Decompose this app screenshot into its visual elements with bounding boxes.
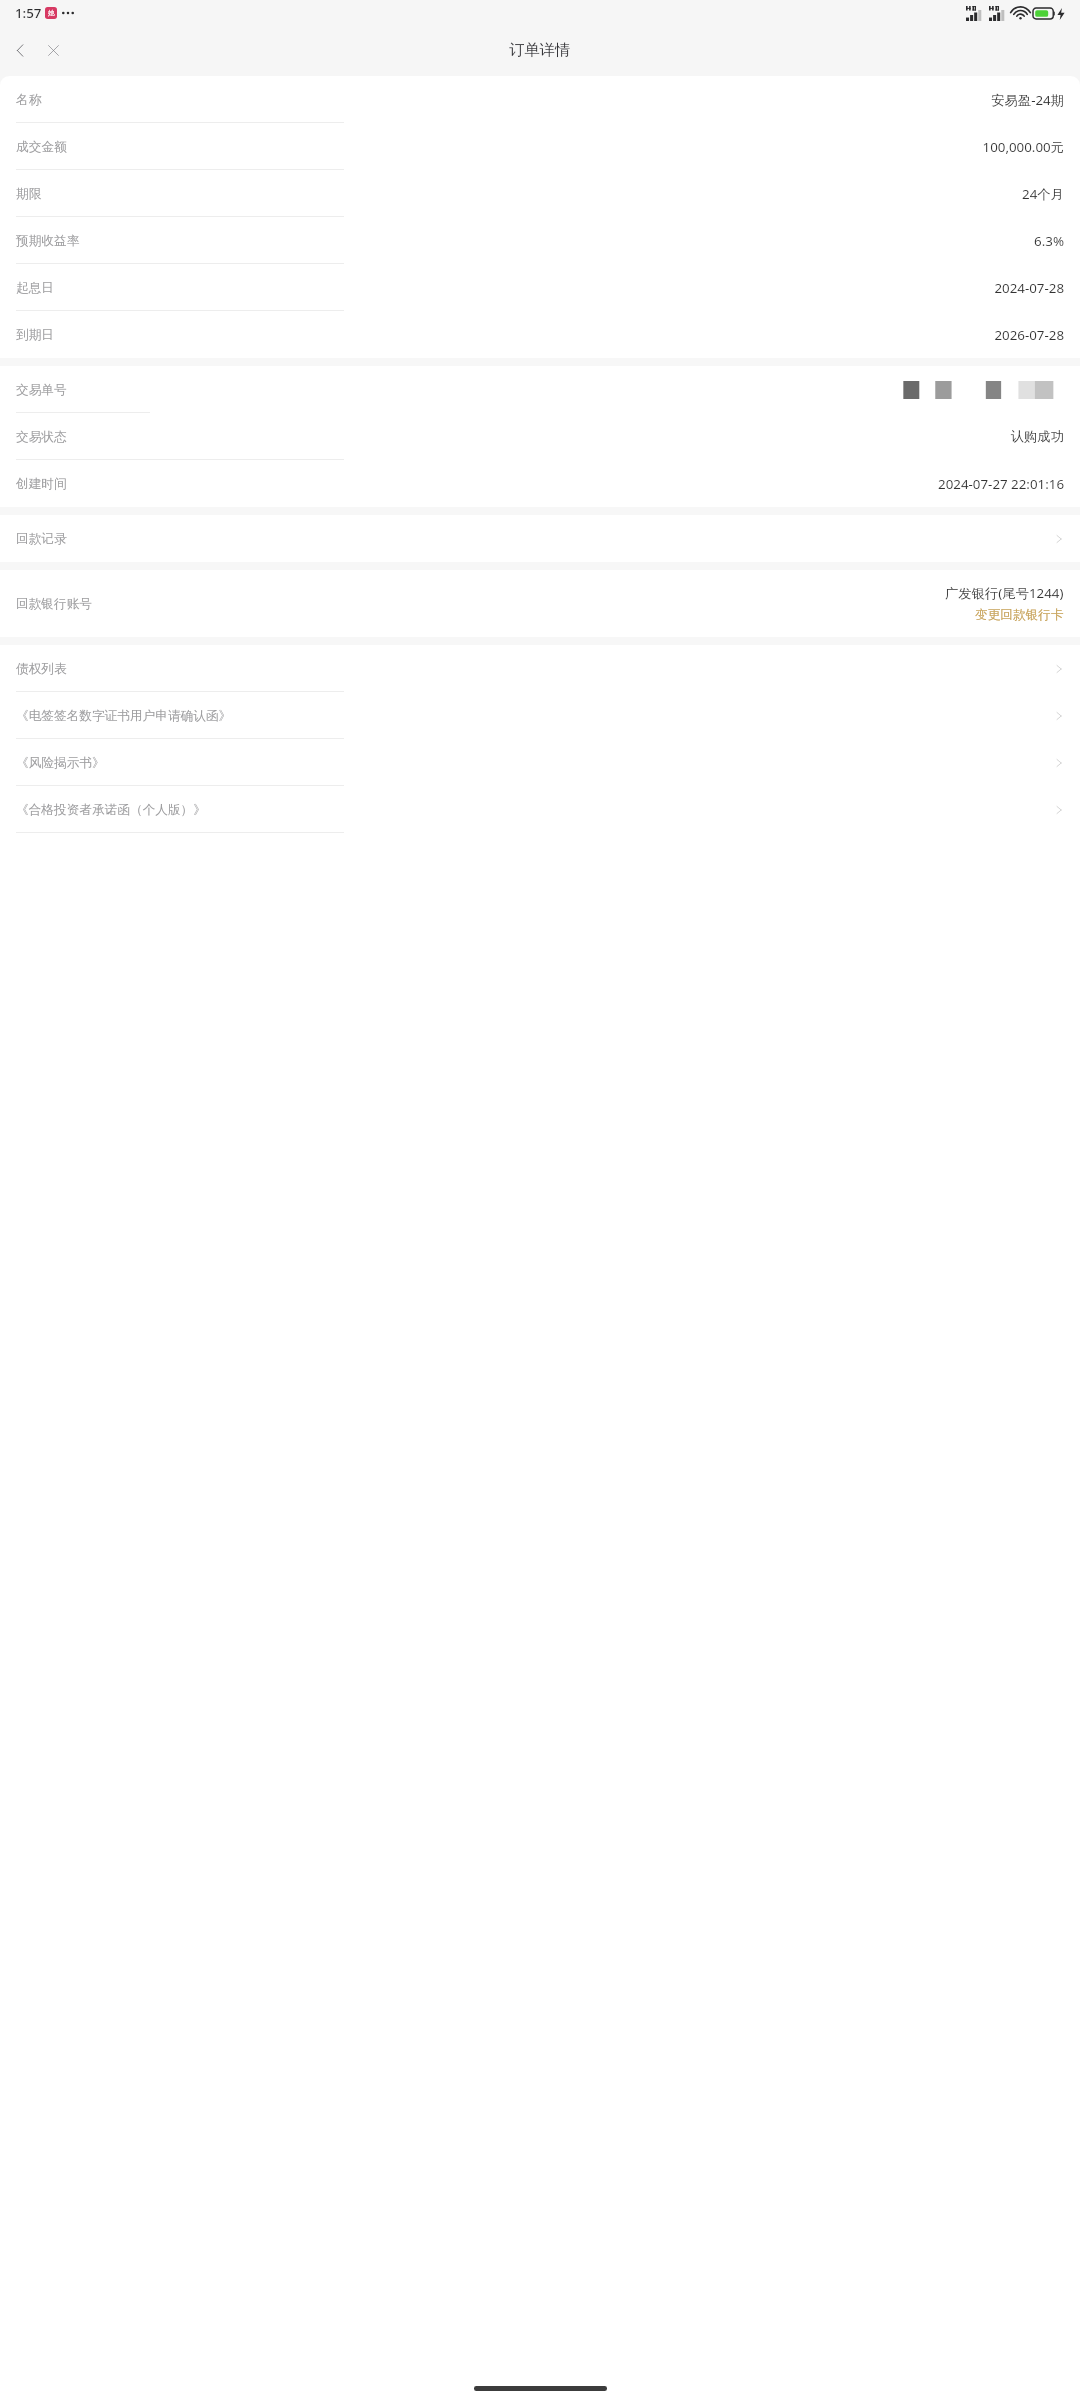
button[interactable]: 债权列表 [0,645,1080,692]
button[interactable]: 起息日 [0,264,1080,311]
staticText: 她 [48,9,55,17]
staticText: 期限 [16,186,42,202]
staticText: 《风险揭示书》 [16,755,105,771]
staticText: 2026-07-28 [994,326,1064,344]
button[interactable]: 预期收益率 [0,217,1080,264]
staticText: 订单详情 [509,40,571,59]
staticText: 认购成功 [1010,428,1064,445]
staticText: 到期日 [16,327,54,343]
button[interactable]: 创建时间 [0,460,1080,507]
button[interactable]: Back [6,36,34,64]
staticText: 安易盈-24期 [991,91,1064,109]
staticText: 名称 [16,92,42,108]
staticText: 1:57 [15,4,42,22]
button[interactable]: 名称 [0,76,1080,123]
button[interactable]: Close [39,36,67,64]
staticText: 变更回款银行卡 [975,607,1064,623]
staticText: 交易单号 [16,382,67,398]
staticText: 起息日 [16,280,54,296]
staticText: 成交金额 [16,139,67,155]
staticText: 债权列表 [16,661,67,677]
button[interactable]: 成交金额 [0,123,1080,170]
button[interactable]: 交易状态 [0,413,1080,460]
staticText: 交易状态 [16,429,67,445]
button[interactable]: 到期日 [0,311,1080,358]
button[interactable]: 交易单号 [0,366,1080,413]
staticText: 2024-07-28 [994,279,1064,297]
staticText: 广发银行(尾号1244) [945,584,1064,602]
button[interactable]: 《电签签名数字证书用户申请确认函》 [0,692,1080,739]
staticText: 回款银行账号 [16,596,92,612]
staticText: 回款记录 [16,531,67,547]
button[interactable]: 《合格投资者承诺函（个人版）》 [0,786,1080,833]
staticText: 预期收益率 [16,233,80,249]
staticText: 《电签签名数字证书用户申请确认函》 [16,708,232,724]
staticText: 创建时间 [16,476,67,492]
staticText: 100,000.00元 [982,138,1064,156]
staticText: 6.3% [1034,232,1064,250]
staticText: 24个月 [1022,185,1064,203]
button[interactable]: 期限 [0,170,1080,217]
button[interactable]: 《风险揭示书》 [0,739,1080,786]
button[interactable]: 回款银行账号 [0,570,1080,637]
staticText: 《合格投资者承诺函（个人版）》 [16,802,206,818]
staticText: 2024-07-27 22:01:16 [938,475,1064,493]
button[interactable]: 回款记录 [0,515,1080,562]
